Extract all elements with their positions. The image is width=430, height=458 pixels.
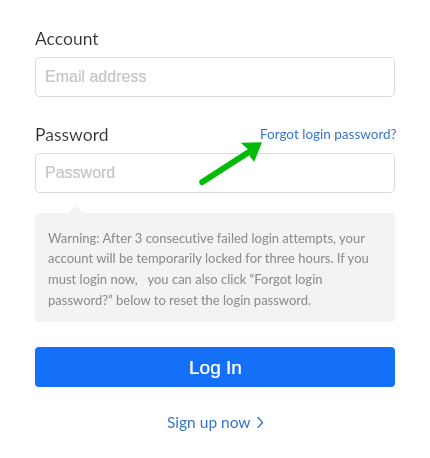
button[interactable]: Password: [35, 153, 395, 193]
button[interactable]: Email address: [35, 57, 395, 97]
staticText: Log In: [189, 357, 242, 378]
staticText: Forgot login password?: [260, 126, 397, 142]
staticText: Warning: After 3 consecutive failed logi…: [48, 230, 381, 308]
staticText: Password: [45, 164, 116, 182]
button[interactable]: Forgot login password?: [260, 126, 397, 142]
button[interactable]: Log In: [35, 347, 395, 387]
staticText: Password: [35, 124, 109, 145]
staticText: Sign up now: [167, 413, 251, 432]
staticText: Email address: [45, 68, 147, 86]
button[interactable]: Sign up now: [163, 409, 268, 436]
staticText: Account: [35, 28, 99, 49]
